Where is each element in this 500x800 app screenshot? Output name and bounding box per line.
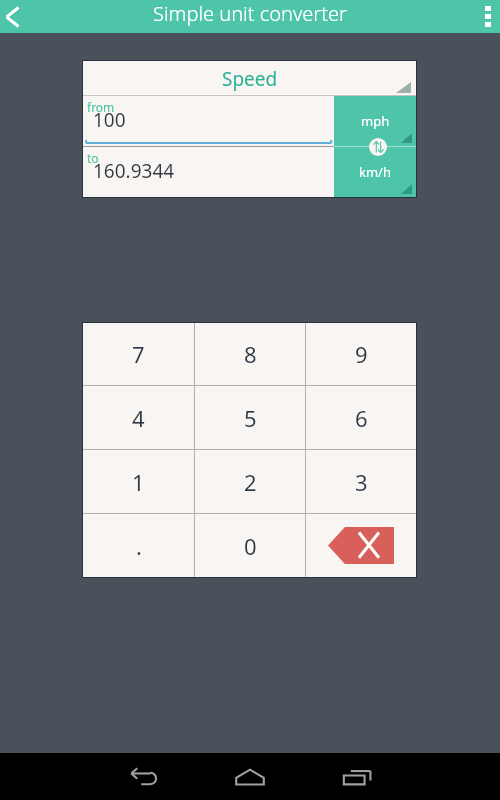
button[interactable]: 5 <box>195 386 305 449</box>
staticText: 0 <box>244 531 257 561</box>
staticText: 5 <box>244 403 257 433</box>
button[interactable]: mph <box>334 96 416 146</box>
button[interactable]: to <box>83 147 334 197</box>
staticText: 6 <box>355 403 368 433</box>
button[interactable]: from <box>83 96 334 146</box>
staticText: 9 <box>355 339 368 369</box>
staticText: 2 <box>244 467 257 497</box>
button[interactable]: 7 <box>83 323 194 385</box>
button[interactable]: 3 <box>306 450 416 513</box>
button[interactable]: km/h <box>334 147 416 197</box>
button[interactable]: Back <box>121 754 167 800</box>
staticText: to <box>87 150 99 166</box>
staticText: Simple unit converter <box>153 0 347 27</box>
button[interactable]: Home <box>227 754 273 800</box>
button[interactable]: 6 <box>306 386 416 449</box>
staticText: mph <box>361 112 390 130</box>
button[interactable]: 1 <box>83 450 194 513</box>
other: Backspace <box>328 527 394 564</box>
staticText: from <box>87 99 115 115</box>
button[interactable]: Recent apps <box>334 754 380 800</box>
staticText: Speed <box>222 66 278 92</box>
button[interactable]: Backspace <box>306 514 416 577</box>
staticText: 1 <box>132 467 145 497</box>
button[interactable]: 8 <box>195 323 305 385</box>
staticText: 100 <box>93 107 126 133</box>
button[interactable]: 2 <box>195 450 305 513</box>
button[interactable]: Navigate up <box>0 0 30 33</box>
button[interactable]: More options <box>470 0 500 33</box>
button[interactable]: Swap units <box>369 138 387 156</box>
button[interactable]: 9 <box>306 323 416 385</box>
staticText: km/h <box>359 163 391 181</box>
button[interactable]: Speed <box>83 61 416 95</box>
button[interactable]: 0 <box>195 514 305 577</box>
button[interactable]: . <box>83 514 194 577</box>
staticText: 4 <box>132 403 145 433</box>
staticText: 7 <box>132 339 145 369</box>
staticText: 3 <box>355 467 368 497</box>
staticText: 160.9344 <box>93 158 175 184</box>
button[interactable]: 4 <box>83 386 194 449</box>
staticText: 8 <box>244 339 257 369</box>
staticText: . <box>136 531 142 561</box>
